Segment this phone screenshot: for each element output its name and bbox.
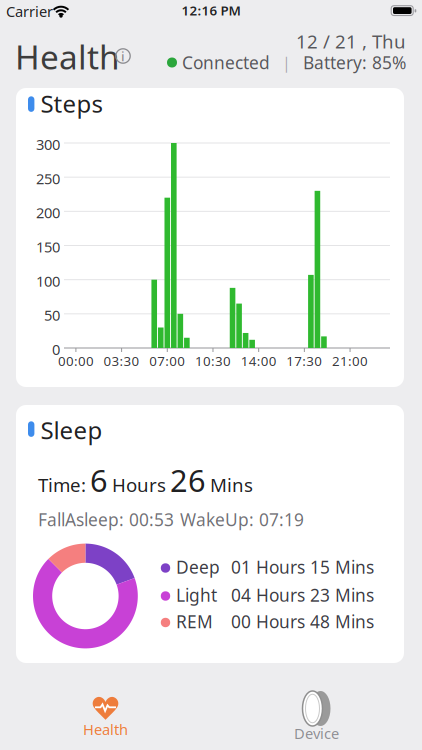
button[interactable]: Device	[211, 678, 422, 750]
staticText: Sleep	[40, 414, 102, 446]
staticText: WakeUp: 07:19	[180, 508, 304, 531]
staticText: 00:00	[58, 352, 94, 370]
staticText: 12:16 PM	[181, 1, 240, 19]
staticText: Device	[294, 723, 339, 743]
staticText: 200	[36, 203, 60, 222]
staticText: Carrier	[6, 1, 53, 21]
staticText: Battery: 85%	[303, 51, 406, 74]
staticText: 100	[36, 271, 60, 291]
staticText: 01 Hours 15 Mins	[231, 556, 374, 579]
staticText: 17:30	[286, 352, 322, 370]
staticText: Connected	[177, 51, 270, 74]
staticText: 300	[36, 134, 60, 154]
staticText: Time:	[38, 472, 86, 497]
staticText: Light	[176, 584, 217, 607]
staticText: 50	[44, 305, 60, 325]
staticText: 14:00	[241, 352, 277, 370]
staticText: Steps	[40, 87, 102, 119]
staticText: Deep	[176, 556, 220, 579]
staticText: FallAsleep: 00:53	[38, 508, 174, 531]
staticText: 150	[36, 237, 60, 256]
staticText: 10:30	[195, 352, 231, 370]
staticText: Health	[83, 719, 128, 739]
staticText: REM	[176, 610, 213, 633]
staticText: 04 Hours 23 Mins	[231, 584, 374, 607]
staticText: 26	[170, 460, 206, 500]
button[interactable]: Health	[0, 678, 211, 750]
staticText: 250	[36, 169, 60, 188]
staticText: |	[270, 52, 303, 73]
staticText: 00 Hours 48 Mins	[231, 610, 374, 633]
staticText: i	[121, 47, 125, 65]
staticText: 0	[52, 339, 60, 359]
staticText: 21:00	[332, 352, 368, 370]
staticText: Hours	[112, 472, 166, 497]
staticText: 07:00	[149, 352, 185, 370]
staticText: Health	[15, 34, 120, 79]
button[interactable]: i	[115, 48, 131, 64]
staticText: 03:30	[104, 352, 140, 370]
staticText: Mins	[210, 472, 253, 497]
staticText: 12 / 21 , Thu	[296, 29, 406, 54]
staticText: 6	[90, 460, 108, 500]
